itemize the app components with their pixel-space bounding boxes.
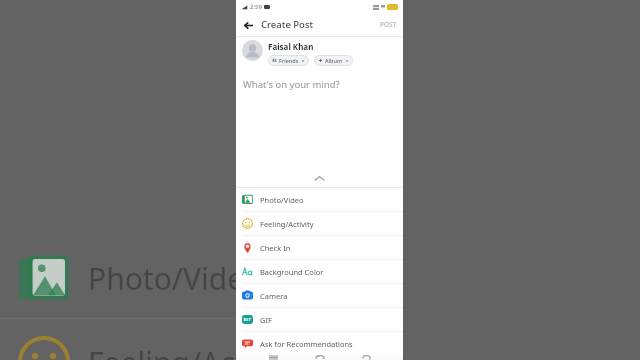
button[interactable]: Camera bbox=[236, 284, 403, 307]
staticText: Background Color bbox=[260, 267, 324, 277]
staticText: Create Post bbox=[261, 18, 314, 31]
button[interactable]: Album bbox=[314, 55, 353, 66]
staticText: Check In bbox=[260, 243, 291, 253]
button[interactable]: Friends bbox=[268, 55, 309, 66]
button[interactable]: Collapse bbox=[236, 170, 403, 187]
button[interactable]: Feeling/Activity bbox=[236, 212, 403, 235]
staticText: GIF bbox=[260, 315, 272, 325]
button[interactable]: Recents bbox=[263, 355, 283, 360]
staticText: Camera bbox=[260, 291, 288, 301]
staticText: Feeling/Acti bbox=[88, 342, 254, 360]
button[interactable]: Check In bbox=[236, 236, 403, 259]
button[interactable]: Back bbox=[356, 355, 376, 360]
staticText: Ask for Recommendations bbox=[260, 339, 353, 349]
button[interactable]: Ask for Recommendations bbox=[236, 332, 403, 355]
staticText: Photo/Video bbox=[88, 258, 263, 299]
staticText: Photo/Video bbox=[260, 195, 304, 205]
staticText: Faisal Khan bbox=[268, 41, 314, 52]
button[interactable]: Photo/Video bbox=[236, 188, 403, 211]
staticText: 2:59 bbox=[250, 3, 262, 11]
button[interactable]: GIF bbox=[236, 308, 403, 331]
staticText: Friends bbox=[279, 57, 299, 64]
staticText: Album bbox=[325, 57, 343, 64]
button[interactable]: Back bbox=[241, 18, 255, 32]
staticText: What's on your mind? bbox=[243, 78, 340, 91]
staticText: Feeling/Activity bbox=[260, 219, 314, 229]
button[interactable]: POST bbox=[378, 18, 399, 31]
button[interactable]: Background Color bbox=[236, 260, 403, 283]
staticText: POST bbox=[380, 20, 397, 29]
button[interactable]: Home bbox=[310, 355, 330, 360]
